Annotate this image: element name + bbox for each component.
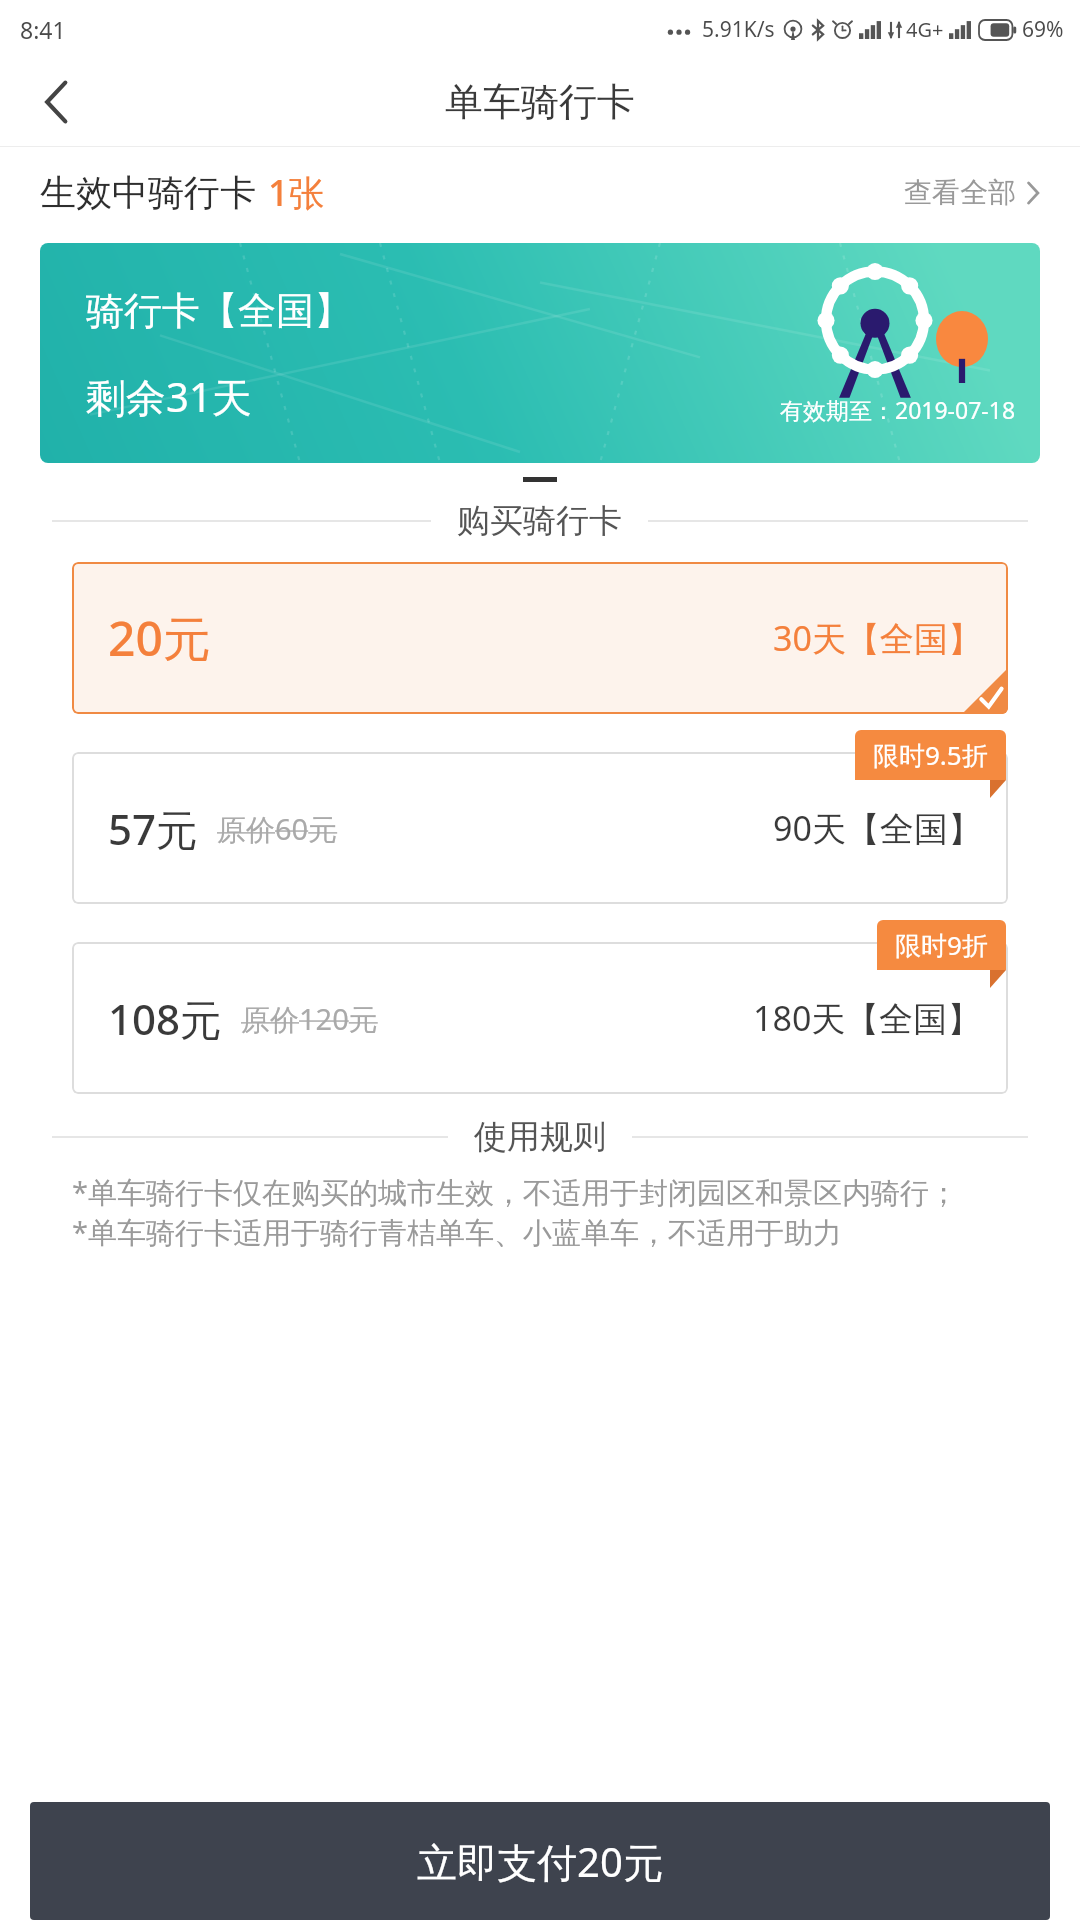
staticText: 30天【全国】 xyxy=(773,615,982,661)
button[interactable]: 20元 xyxy=(72,562,1008,714)
button[interactable]: 立即支付20元 xyxy=(30,1802,1050,1920)
staticText: *单车骑行卡适用于骑行青桔单车、小蓝单车，不适用于助力 xyxy=(72,1212,842,1252)
button[interactable]: 骑行卡【全国】 xyxy=(40,243,1040,463)
button[interactable]: 57元 xyxy=(72,752,1008,904)
button[interactable]: 查看全部 xyxy=(900,169,1044,216)
staticText: 4G+ xyxy=(906,16,944,43)
staticText: 8:41 xyxy=(20,14,66,45)
staticText: 限时9.5折 xyxy=(873,737,988,773)
staticText: 57元 xyxy=(108,800,199,857)
staticText: 使用规则 xyxy=(474,1116,606,1158)
staticText: 原价60元 xyxy=(217,809,338,849)
staticText: 限时9折 xyxy=(895,927,988,963)
staticText: 生效中骑行卡 xyxy=(40,170,256,215)
staticText: 108元 xyxy=(108,990,223,1047)
button[interactable]: Back xyxy=(22,67,92,137)
staticText: 180天【全国】 xyxy=(753,995,982,1041)
staticText: 单车骑行卡 xyxy=(445,78,635,126)
staticText: 原价120元 xyxy=(241,999,378,1039)
staticText: 1张 xyxy=(268,168,325,217)
staticText: 有效期至：2019-07-18 xyxy=(780,394,1016,425)
staticText: 购买骑行卡 xyxy=(457,500,622,542)
staticText: 查看全部 xyxy=(904,175,1016,210)
staticText: 20元 xyxy=(108,605,211,671)
staticText: 69% xyxy=(1022,15,1064,44)
button[interactable]: 108元 xyxy=(72,942,1008,1094)
staticText: 骑行卡【全国】 xyxy=(86,287,352,335)
staticText: 剩余31天 xyxy=(86,369,252,424)
staticText: *单车骑行卡仅在购买的城市生效，不适用于封闭园区和景区内骑行； xyxy=(72,1172,958,1212)
staticText: 90天【全国】 xyxy=(773,805,982,851)
staticText: 立即支付20元 xyxy=(417,1834,663,1889)
staticText: 5.91K/s xyxy=(702,15,775,44)
